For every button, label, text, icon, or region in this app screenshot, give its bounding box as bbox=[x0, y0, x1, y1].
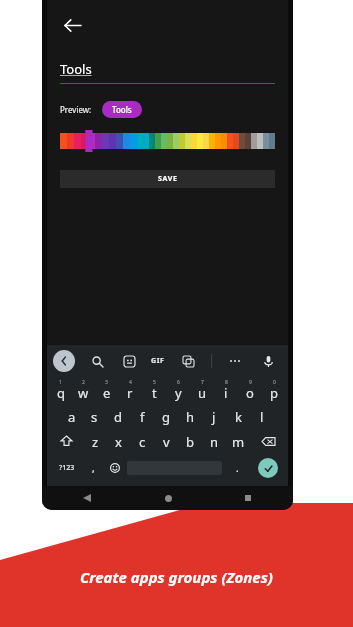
button[interactable]: v bbox=[154, 429, 178, 454]
staticText: , bbox=[92, 461, 95, 475]
staticText: z bbox=[92, 433, 99, 451]
button[interactable]: Emoji bbox=[104, 454, 125, 481]
staticText: 5 bbox=[153, 379, 156, 386]
button[interactable]: 6 bbox=[166, 377, 190, 404]
button[interactable]: b bbox=[178, 429, 202, 454]
staticText: b bbox=[186, 433, 194, 451]
button[interactable]: Close toolbar bbox=[53, 350, 75, 372]
staticText: 2 bbox=[82, 379, 85, 386]
button[interactable]: Done bbox=[258, 458, 278, 478]
staticText: v bbox=[163, 433, 170, 451]
staticText: . bbox=[236, 461, 239, 475]
staticText: m bbox=[232, 433, 245, 451]
button[interactable]: 2 bbox=[72, 377, 95, 404]
button[interactable]: 3 bbox=[95, 377, 118, 404]
button[interactable]: Recents bbox=[237, 487, 259, 509]
button[interactable]: 0 bbox=[262, 377, 286, 404]
button[interactable]: j bbox=[202, 404, 226, 429]
button[interactable] bbox=[81, 133, 88, 149]
button[interactable]: g bbox=[154, 404, 178, 429]
button[interactable]: l bbox=[250, 404, 274, 429]
button[interactable]: d bbox=[106, 404, 130, 429]
staticText: d bbox=[114, 408, 122, 426]
button[interactable]: Home bbox=[157, 487, 179, 509]
button[interactable]: m bbox=[226, 429, 250, 454]
button[interactable]: s bbox=[83, 404, 106, 429]
button[interactable]: Shift bbox=[49, 429, 84, 454]
button[interactable]: 5 bbox=[142, 377, 166, 404]
staticText: 6 bbox=[177, 379, 180, 386]
button[interactable]: 4 bbox=[118, 377, 142, 404]
button[interactable]: Translate bbox=[178, 351, 198, 371]
staticText: s bbox=[91, 408, 98, 426]
button[interactable]: Stickers bbox=[119, 351, 139, 371]
staticText: g bbox=[162, 408, 170, 426]
staticText: n bbox=[210, 433, 219, 451]
button[interactable]: Voice input bbox=[258, 351, 278, 371]
button[interactable]: 8 bbox=[214, 377, 238, 404]
button[interactable]: Back bbox=[76, 487, 98, 509]
button[interactable]: x bbox=[107, 429, 130, 454]
button[interactable]: Search bbox=[87, 351, 107, 371]
button[interactable]: z bbox=[84, 429, 107, 454]
button[interactable]: f bbox=[130, 404, 154, 429]
button[interactable]: , bbox=[83, 454, 104, 481]
staticText: 1 bbox=[59, 379, 62, 386]
button[interactable]: a bbox=[60, 404, 83, 429]
staticText: GIF bbox=[151, 356, 165, 366]
button[interactable]: 7 bbox=[190, 377, 214, 404]
button[interactable]: 9 bbox=[238, 377, 262, 404]
button[interactable]: c bbox=[130, 429, 154, 454]
button[interactable]: h bbox=[178, 404, 202, 429]
button[interactable]: Back bbox=[55, 8, 89, 42]
button[interactable]: Backspace bbox=[250, 429, 286, 454]
button[interactable]: ?123 bbox=[50, 454, 83, 481]
button[interactable]: . bbox=[224, 454, 250, 481]
staticText: h bbox=[186, 408, 195, 426]
staticText: ?123 bbox=[59, 463, 75, 473]
button[interactable]: Tools bbox=[60, 60, 275, 84]
button[interactable]: Tools bbox=[102, 101, 142, 118]
button[interactable]: n bbox=[202, 429, 226, 454]
button[interactable]: 1 bbox=[49, 377, 72, 404]
button[interactable]: k bbox=[226, 404, 250, 429]
button[interactable]: SAVE bbox=[60, 170, 275, 188]
button[interactable]: GIF bbox=[151, 356, 165, 366]
staticText: Tools bbox=[60, 60, 92, 78]
button[interactable]: More options bbox=[225, 351, 245, 371]
